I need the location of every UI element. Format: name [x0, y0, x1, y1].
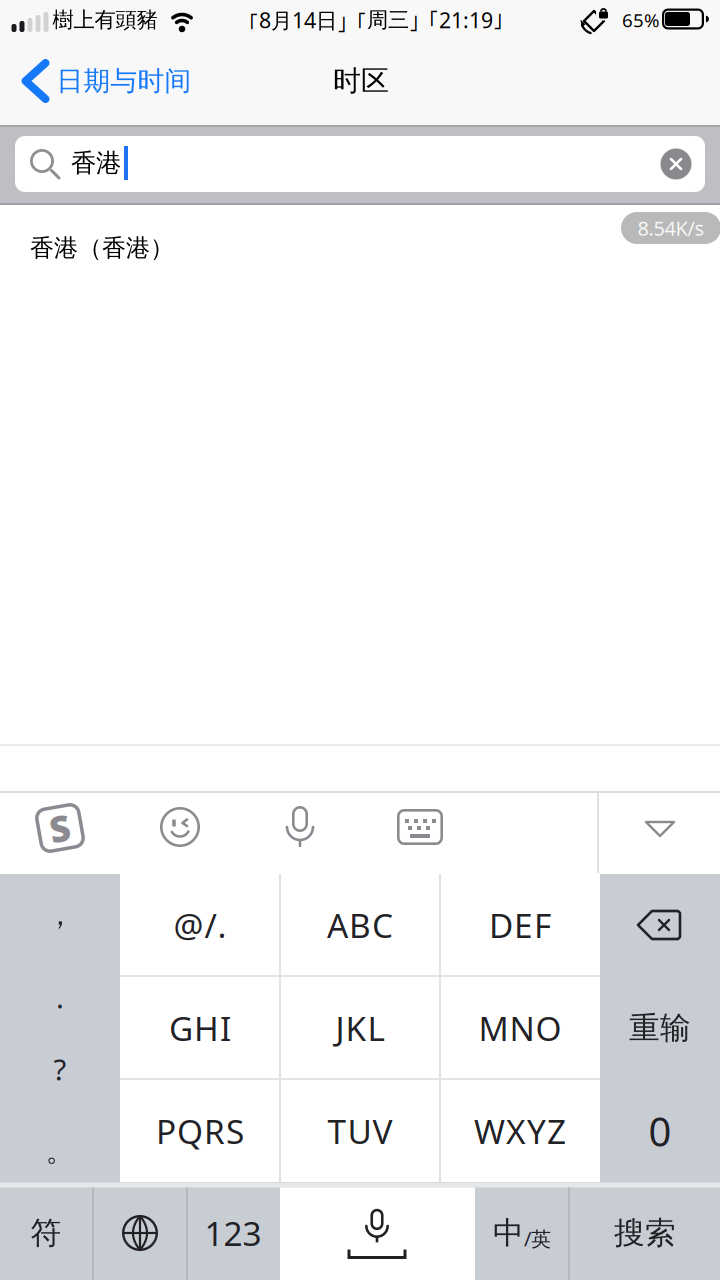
staticText: GHI — [169, 1006, 231, 1050]
staticText: 香港 — [71, 147, 121, 178]
button[interactable]: 中 — [477, 1188, 567, 1278]
staticText: S — [49, 804, 70, 852]
staticText: 重输 — [629, 1009, 691, 1047]
staticText: @/. — [173, 903, 226, 947]
button[interactable]: PQRS — [122, 1081, 278, 1180]
staticText: 65% — [622, 8, 660, 32]
staticText: 0 — [648, 1104, 671, 1157]
button[interactable]: GHI — [122, 978, 278, 1077]
staticText: TUV — [327, 1109, 392, 1153]
button[interactable]: 表情 — [160, 807, 200, 847]
button[interactable]: ? — [1, 1030, 119, 1107]
button[interactable]: 删除 — [601, 875, 719, 975]
staticText: ? — [53, 1049, 66, 1088]
button[interactable]: ， — [1, 876, 119, 953]
staticText: DEF — [489, 903, 551, 947]
staticText: /英 — [524, 1225, 551, 1252]
button[interactable]: ABC — [282, 875, 438, 974]
staticText: 。 — [45, 1133, 74, 1169]
button[interactable]: MNO — [442, 978, 598, 1077]
staticText: 日期与时间 — [56, 65, 191, 97]
staticText: 8.54K/s — [637, 215, 704, 241]
button[interactable]: 搜索 — [572, 1188, 717, 1278]
staticText: ， — [45, 897, 74, 933]
staticText: 123 — [204, 1211, 261, 1255]
staticText: . — [56, 977, 64, 1016]
button[interactable]: 符 — [1, 1188, 91, 1278]
button[interactable]: WXYZ — [442, 1081, 598, 1180]
staticText: 符 — [30, 1214, 61, 1252]
button[interactable]: 语音 — [280, 805, 320, 849]
staticText: 中 — [493, 1214, 524, 1252]
staticText: 香港（香港） — [30, 233, 174, 263]
staticText: 时区 — [333, 64, 389, 98]
staticText: ABC — [327, 903, 393, 947]
button[interactable]: 重输 — [601, 978, 719, 1078]
button[interactable]: 收起键盘 — [644, 820, 676, 838]
button[interactable]: 键盘布局 — [397, 809, 443, 845]
button[interactable]: 日期与时间 — [20, 59, 191, 103]
button[interactable]: 语音输入 — [282, 1188, 472, 1278]
button[interactable]: 切换输入法 — [95, 1188, 185, 1278]
staticText: MNO — [478, 1006, 561, 1050]
staticText: ｢8月14日｣ — [248, 6, 348, 34]
staticText: 搜索 — [614, 1214, 676, 1252]
staticText: ｢周三｣ — [356, 7, 420, 33]
button[interactable]: 香港（香港） — [30, 233, 690, 263]
button[interactable]: . — [1, 958, 119, 1035]
button[interactable]: DEF — [442, 875, 598, 974]
button[interactable]: 搜狗 — [33, 801, 87, 855]
staticText: ｢21:19｣ — [428, 6, 504, 34]
button[interactable]: @/. — [122, 875, 278, 974]
staticText: WXYZ — [474, 1109, 566, 1153]
button[interactable]: JKL — [282, 978, 438, 1077]
staticText: JKL — [335, 1006, 384, 1050]
staticText: PQRS — [156, 1109, 244, 1153]
button[interactable]: 。 — [1, 1112, 119, 1189]
staticText: 樹上有頭豬 — [52, 7, 157, 33]
button[interactable]: 清除 — [660, 148, 691, 179]
button[interactable]: 0 — [601, 1081, 719, 1181]
button[interactable]: TUV — [282, 1081, 438, 1180]
button[interactable]: 123 — [188, 1188, 278, 1278]
